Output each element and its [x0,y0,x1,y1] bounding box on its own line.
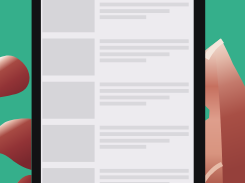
button[interactable] [0,0,245,183]
